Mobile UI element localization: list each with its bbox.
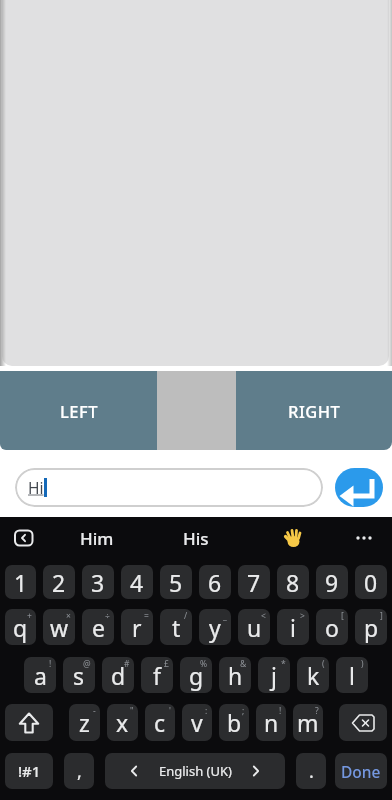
button[interactable]: u	[238, 609, 270, 645]
button[interactable]: 0	[355, 565, 387, 599]
button[interactable]: n	[256, 704, 286, 741]
button[interactable]: a	[24, 657, 56, 693]
staticText: .	[309, 759, 314, 784]
button[interactable]: 3	[82, 565, 114, 599]
button[interactable]: s	[63, 657, 95, 693]
staticText: &	[240, 658, 247, 670]
button[interactable]: b	[219, 704, 249, 741]
staticText: m	[297, 707, 319, 738]
staticText: £	[164, 658, 169, 670]
staticText: RIGHT	[288, 400, 341, 422]
staticText: 1	[14, 567, 28, 598]
button[interactable]: k	[297, 657, 329, 693]
staticText: n	[264, 707, 279, 738]
button[interactable]: m	[293, 704, 323, 741]
button[interactable]: 7	[238, 565, 270, 599]
button[interactable]: g	[180, 657, 212, 693]
button[interactable]: Hi	[15, 468, 323, 507]
staticText: u	[247, 612, 262, 643]
staticText: <	[261, 610, 266, 622]
button[interactable]	[352, 526, 376, 550]
button[interactable]: c	[145, 704, 175, 741]
staticText: p	[364, 612, 379, 643]
staticText: 6	[208, 567, 222, 598]
staticText: d	[111, 660, 126, 691]
button[interactable]	[13, 527, 35, 549]
button[interactable]: v	[182, 704, 212, 741]
button[interactable]: !#1	[5, 753, 53, 789]
staticText: !	[49, 658, 52, 670]
staticText: 7	[247, 567, 261, 598]
staticText: !	[279, 705, 282, 717]
button[interactable]	[339, 704, 387, 741]
button[interactable]: Him	[72, 520, 122, 556]
button[interactable]: r	[121, 609, 153, 645]
staticText: English (UK)	[159, 762, 232, 780]
button[interactable]: x	[107, 704, 138, 741]
button[interactable]: 1	[5, 565, 36, 599]
staticText: 0	[364, 567, 378, 598]
staticText: g	[189, 660, 204, 691]
button[interactable]: q	[5, 609, 36, 645]
button[interactable]: l	[336, 657, 368, 693]
button[interactable]: d	[102, 657, 134, 693]
staticText: 5	[169, 567, 183, 598]
staticText: _	[223, 610, 227, 622]
staticText: LEFT	[60, 400, 98, 422]
staticText: (	[322, 658, 325, 670]
button[interactable]: English (UK)	[105, 753, 285, 789]
staticText: )	[361, 658, 364, 670]
button[interactable]: 2	[43, 565, 75, 599]
staticText: i	[290, 612, 296, 643]
staticText: y	[209, 612, 221, 643]
staticText: His	[183, 527, 209, 550]
button[interactable]: y	[199, 609, 231, 645]
button[interactable]: t	[160, 609, 192, 645]
button[interactable]: z	[69, 704, 100, 741]
staticText: j	[271, 660, 277, 691]
button[interactable]	[335, 468, 383, 507]
button[interactable]: 8	[277, 565, 309, 599]
staticText: -	[93, 705, 96, 717]
staticText: "	[130, 705, 134, 717]
button[interactable]: .	[296, 753, 326, 789]
button[interactable]: 9	[316, 565, 348, 599]
staticText: [	[341, 610, 344, 622]
staticText: @	[83, 658, 91, 670]
staticText: b	[227, 707, 242, 738]
button[interactable]	[281, 526, 305, 550]
staticText: c	[154, 707, 166, 738]
button[interactable]: 4	[121, 565, 153, 599]
staticText: +	[27, 610, 32, 622]
button[interactable]: h	[219, 657, 251, 693]
staticText: x	[116, 707, 129, 738]
staticText: s	[73, 660, 85, 691]
button[interactable]: j	[258, 657, 290, 693]
button[interactable]: His	[171, 520, 221, 556]
button[interactable]: i	[277, 609, 309, 645]
button[interactable]: Done	[335, 753, 387, 789]
button[interactable]: f	[141, 657, 173, 693]
staticText: Done	[341, 761, 381, 782]
button[interactable]: ,	[64, 753, 94, 789]
staticText: !#1	[18, 761, 41, 781]
staticText: ÷	[105, 610, 110, 622]
button[interactable]: RIGHT	[236, 371, 392, 450]
staticText: h	[228, 660, 243, 691]
staticText: =	[144, 610, 149, 622]
staticText: a	[34, 660, 47, 691]
staticText: z	[79, 707, 90, 738]
button[interactable]: e	[82, 609, 114, 645]
staticText: >	[300, 610, 305, 622]
button[interactable]	[5, 704, 53, 741]
button[interactable]: o	[316, 609, 348, 645]
button[interactable]: 6	[199, 565, 231, 599]
staticText: 2	[52, 567, 66, 598]
staticText: ]	[380, 610, 383, 622]
button[interactable]: w	[43, 609, 75, 645]
staticText: 9	[325, 567, 339, 598]
button[interactable]: 5	[160, 565, 192, 599]
button[interactable]: LEFT	[0, 371, 157, 450]
button[interactable]: p	[355, 609, 387, 645]
staticText: v	[191, 707, 203, 738]
